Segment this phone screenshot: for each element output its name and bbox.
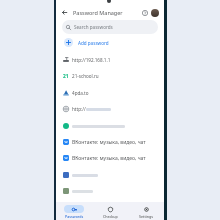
button[interactable]: ВКонтакте: музыка, видео, чат — [56, 134, 164, 150]
staticText: 21-school.ru — [72, 73, 99, 79]
staticText: 21 — [63, 73, 69, 79]
button[interactable]: Search passwords — [62, 20, 158, 34]
button[interactable]: Account — [151, 9, 159, 17]
button[interactable]: ВКонтакте: музыка, видео, чат — [56, 150, 164, 166]
button[interactable]: http://192.168.1.1 — [56, 52, 164, 68]
button[interactable]: 21 — [56, 68, 164, 84]
button[interactable]: http:// — [56, 101, 164, 117]
button[interactable] — [56, 183, 164, 199]
staticText: Checkup — [103, 214, 118, 219]
staticText: Add password — [78, 40, 109, 46]
staticText: Search passwords — [74, 24, 113, 30]
button[interactable]: Settings — [128, 202, 164, 220]
button[interactable]: Help — [140, 8, 150, 18]
staticText: 4pda.to — [72, 90, 89, 96]
staticText: ВКонтакте: музыка, видео, чат — [72, 139, 146, 146]
button[interactable]: Checkup — [92, 202, 128, 220]
button[interactable] — [56, 118, 164, 134]
staticText: Passwords — [65, 214, 84, 219]
button[interactable]: 4pda.to — [56, 85, 164, 101]
button[interactable] — [56, 167, 164, 183]
button[interactable]: Back — [59, 7, 70, 18]
staticText: Password Manager — [73, 9, 123, 16]
staticText: ВКонтакте: музыка, видео, чат — [72, 155, 146, 162]
button[interactable]: Add password — [56, 34, 164, 51]
staticText: http:// — [72, 106, 86, 112]
staticText: Settings — [139, 214, 153, 219]
staticText: http://192.168.1.1 — [72, 57, 111, 63]
button[interactable]: Passwords — [56, 202, 92, 220]
